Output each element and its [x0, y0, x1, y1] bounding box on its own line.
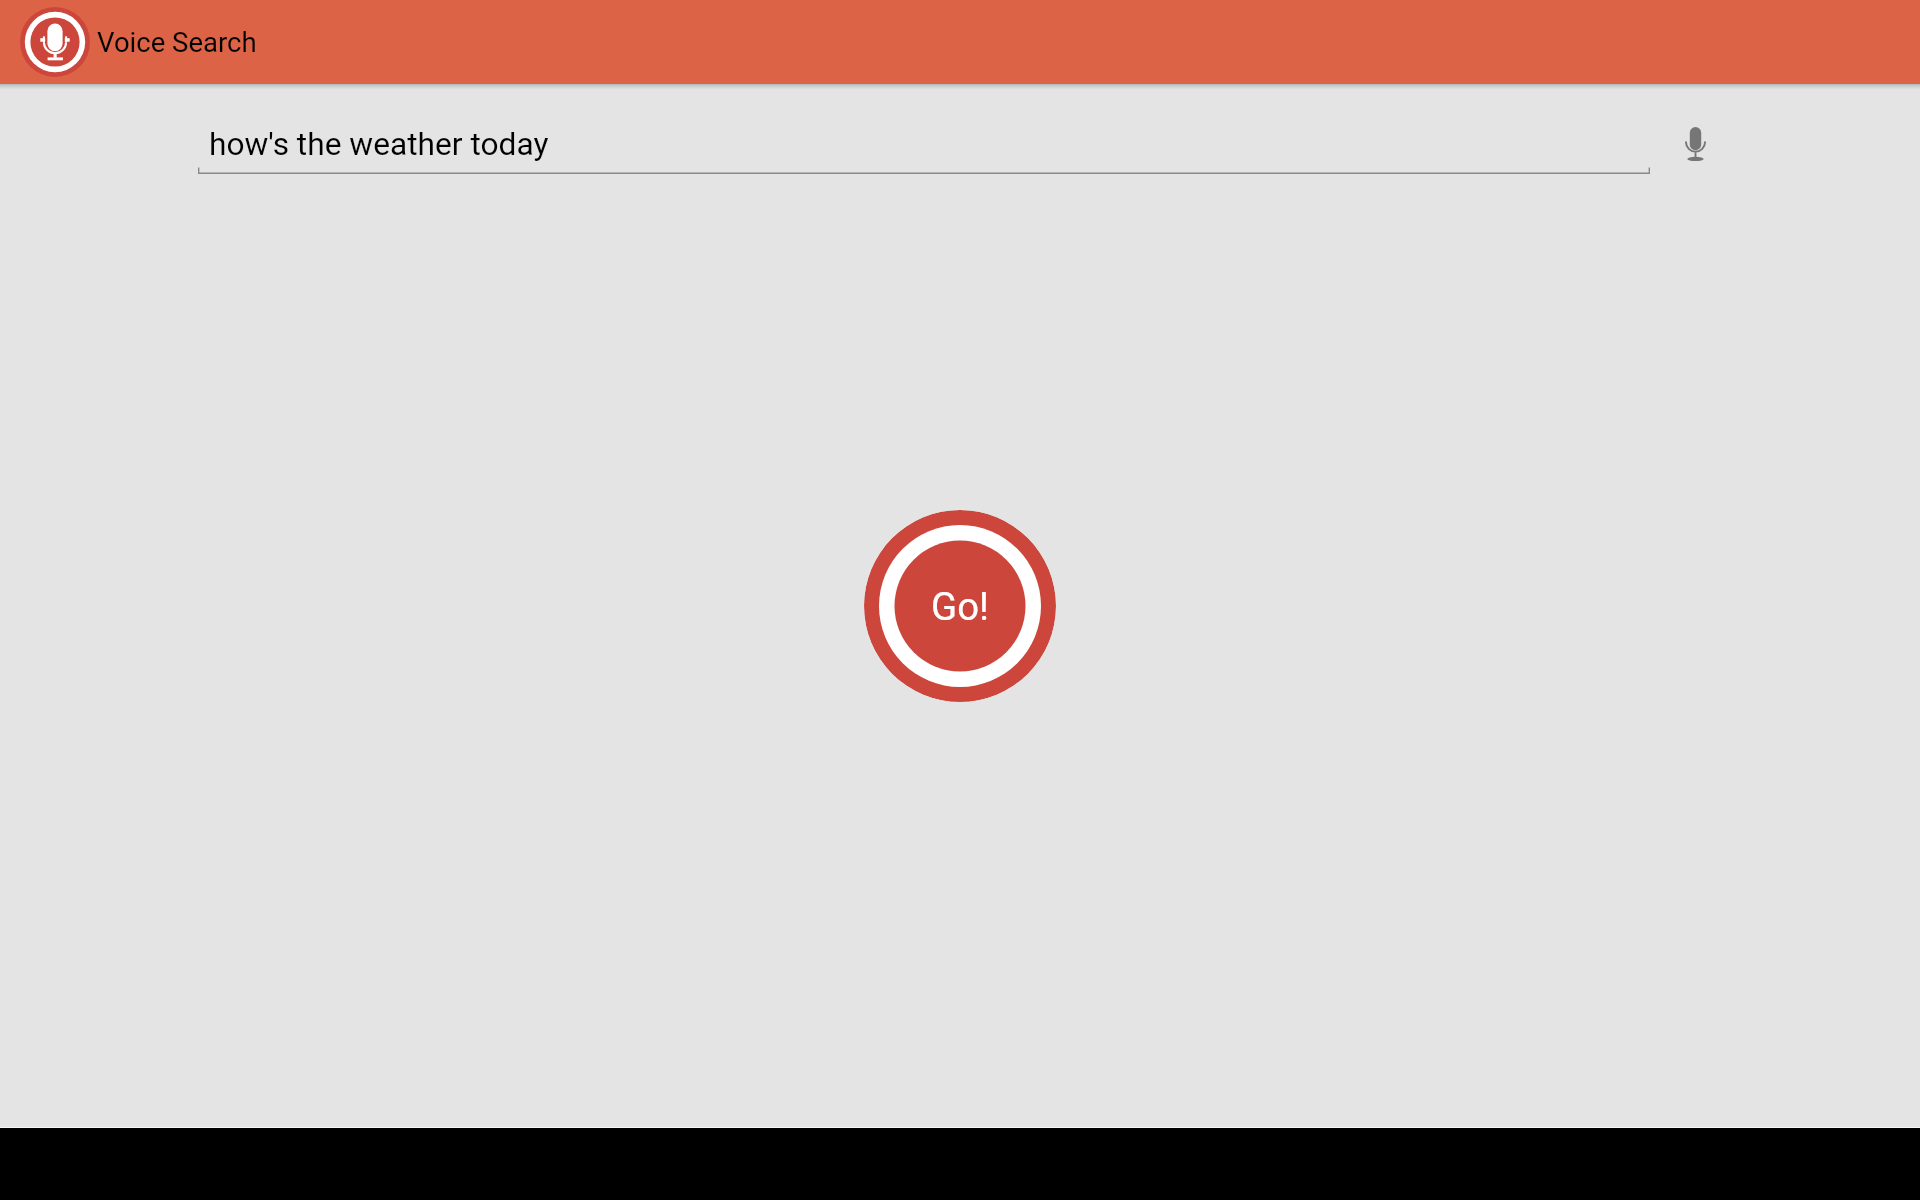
button[interactable]: how's the weather today — [198, 113, 1650, 174]
button[interactable]: Voice Search — [0, 0, 274, 84]
staticText: how's the weather today — [209, 126, 549, 163]
button[interactable]: Go! — [864, 510, 1056, 702]
staticText: Go! — [931, 584, 989, 629]
button[interactable]: Speak now — [1665, 113, 1725, 173]
staticText: Voice Search — [97, 26, 257, 58]
